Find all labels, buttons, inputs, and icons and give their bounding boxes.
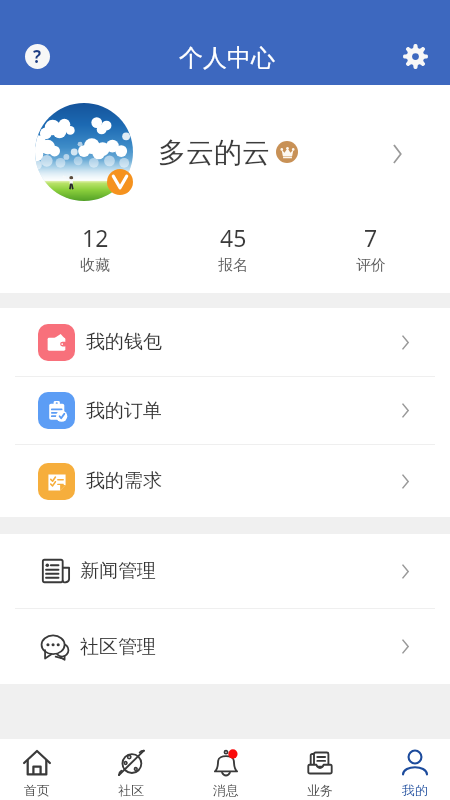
staticText: 我的钱包 <box>86 330 162 354</box>
button[interactable]: Help <box>19 38 55 74</box>
button[interactable]: 社区 <box>86 739 176 800</box>
button[interactable]: 消息 <box>181 739 271 800</box>
button[interactable]: 45 <box>164 221 302 291</box>
button[interactable]: 新闻管理 <box>0 534 450 608</box>
button[interactable]: 首页 <box>0 739 82 800</box>
staticText: 业务 <box>307 782 333 798</box>
staticText: 我的需求 <box>86 469 162 493</box>
staticText: 评价 <box>356 256 386 275</box>
staticText: 我的订单 <box>86 399 162 423</box>
staticText: 个人中心 <box>179 43 275 73</box>
staticText: 社区 <box>118 782 144 798</box>
staticText: 新闻管理 <box>80 559 156 583</box>
staticText: 我的 <box>402 782 428 798</box>
button[interactable]: 我的 <box>370 739 450 800</box>
button[interactable]: 我的订单 <box>0 377 450 444</box>
staticText: 45 <box>220 222 247 253</box>
staticText: 收藏 <box>80 256 110 275</box>
button[interactable]: 7 <box>302 221 440 291</box>
staticText: ? <box>33 45 42 68</box>
staticText: 社区管理 <box>80 635 156 659</box>
staticText: 报名 <box>218 256 248 275</box>
button[interactable]: 我的钱包 <box>0 308 450 376</box>
staticText: 7 <box>364 222 378 253</box>
button[interactable]: 我的需求 <box>0 445 450 517</box>
button[interactable]: 社区管理 <box>0 609 450 684</box>
staticText: 首页 <box>24 782 50 798</box>
staticText: 消息 <box>213 782 239 798</box>
staticText: 12 <box>82 222 109 253</box>
button[interactable]: 业务 <box>275 739 365 800</box>
button[interactable]: 12 <box>26 221 164 291</box>
button[interactable]: Settings <box>397 38 433 74</box>
button[interactable] <box>0 85 450 200</box>
staticText: 多云的云 <box>158 135 270 170</box>
